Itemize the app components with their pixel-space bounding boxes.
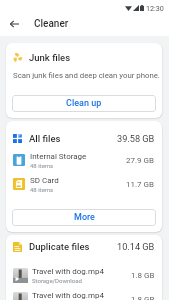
staticText: 11.7 GB [126,180,155,189]
staticText: Travel with dog.mp4 [32,267,104,276]
staticText: 27.9 GB [126,156,155,165]
staticText: Scan junk files and deep clean your phon… [13,71,160,80]
staticText: Storage/Download [32,277,82,284]
staticText: 48 items [30,162,54,169]
staticText: 48 items [30,186,54,193]
staticText: Cleaner [34,18,69,30]
staticText: 10.14 GB [117,241,155,252]
button[interactable]: Travel with dog.mp4 [6,287,162,300]
staticText: SD Card [30,176,59,185]
button[interactable]: More [12,209,156,226]
staticText: Travel with dog.mp4 [32,291,104,300]
staticText: More [74,212,95,223]
staticText: All files [29,133,61,144]
staticText: Junk files [29,52,71,63]
staticText: Internal Storage [30,152,87,161]
button[interactable]: SD Card [6,172,162,196]
button[interactable]: Back [2,12,26,36]
staticText: Clean up [66,98,102,109]
staticText: 39.58 GB [117,133,155,144]
button[interactable]: Clean up [12,95,156,112]
staticText: 1.8 GB [131,271,155,280]
staticText: 1.8 GB [131,295,155,300]
button[interactable]: Travel with dog.mp4 [6,263,162,287]
staticText: Duplicate files [29,241,90,252]
button[interactable]: Internal Storage [6,148,162,172]
staticText: 12:30 [146,4,164,12]
